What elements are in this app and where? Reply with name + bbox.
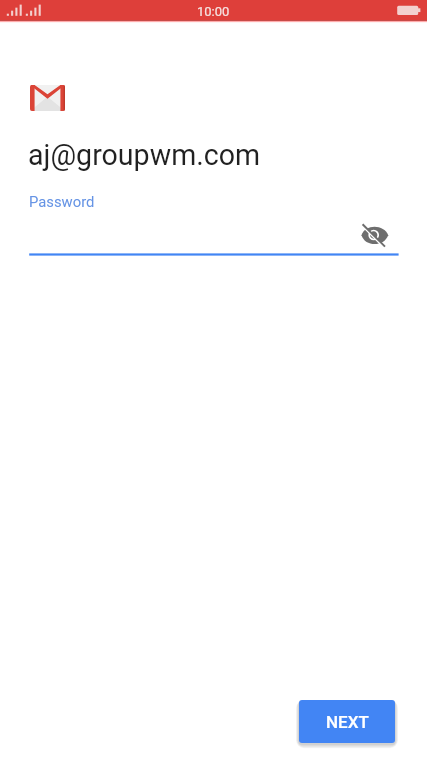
button[interactable]: Show password (355, 218, 395, 254)
staticText: aj@groupwm.com (28, 138, 261, 172)
staticText: Password (29, 193, 95, 210)
staticText: 10:00 (197, 4, 230, 19)
staticText: NEXT (326, 712, 369, 732)
button[interactable]: NEXT (299, 700, 395, 743)
